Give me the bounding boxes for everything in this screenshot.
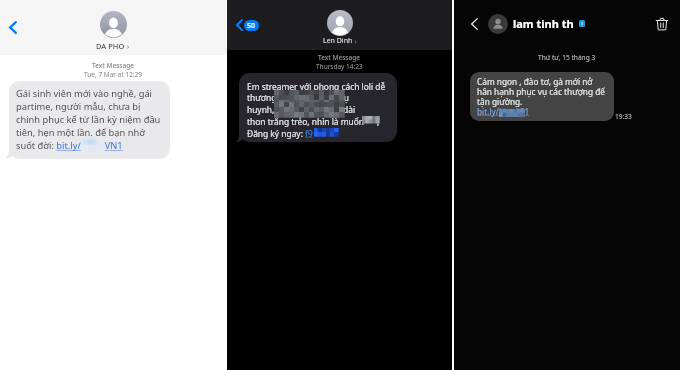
staticText: › [125, 41, 130, 51]
button[interactable]: DA PHO [96, 11, 130, 51]
staticText: Len Dinh [323, 36, 353, 46]
staticText: Tue, 7 Mar at 12:29 [84, 70, 143, 79]
button[interactable]: Cám ngon , đào tơ, gà mới nở hân hạnh ph… [470, 72, 614, 121]
button[interactable]: Em streamer với phong cách loli dễ thươn… [239, 73, 397, 142]
staticText: DA PHO [96, 41, 125, 51]
staticText: Thursday 14:23 [316, 62, 363, 71]
staticText: Gái sinh viên mới vào nghề, gái partime,… [16, 87, 165, 152]
staticText: Text Message [92, 61, 135, 70]
staticText: 19:33 [615, 112, 632, 121]
staticText: Cám ngon , đào tơ, gà mới nở hân hạnh ph… [477, 76, 606, 117]
button[interactable]: Back [236, 19, 259, 31]
staticText: Thứ tư, 15 tháng 3 [538, 53, 596, 62]
button[interactable]: Back [468, 17, 481, 30]
staticText: lam tinh th [513, 16, 574, 31]
staticText: Text Message [318, 53, 361, 62]
staticText: › [353, 37, 357, 46]
button[interactable]: Len Dinh [323, 10, 357, 46]
button[interactable]: Gái sinh viên mới vào nghề, gái partime,… [9, 81, 170, 159]
staticText: Em streamer với phong cách loli dễ thươn… [247, 81, 386, 139]
button[interactable]: Back [9, 21, 17, 34]
button[interactable]: Delete [655, 17, 669, 31]
staticText: 50 [247, 21, 256, 31]
